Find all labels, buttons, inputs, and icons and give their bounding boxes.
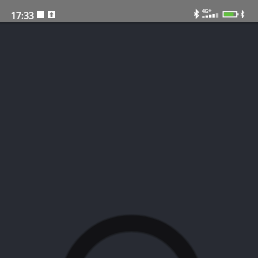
staticText: 17:33 bbox=[11, 9, 35, 21]
button[interactable]: Start bbox=[61, 215, 203, 258]
staticText: 4G+ bbox=[202, 8, 212, 15]
